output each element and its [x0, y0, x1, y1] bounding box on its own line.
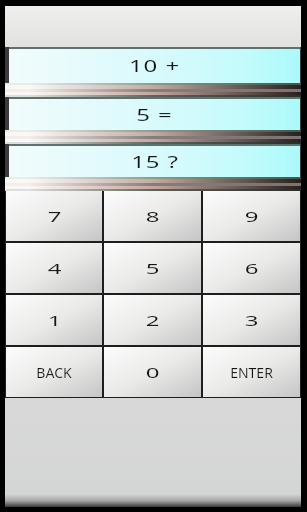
button[interactable]: 6	[203, 243, 300, 293]
staticText: BACK	[36, 363, 72, 382]
button[interactable]: 5	[104, 243, 201, 293]
button[interactable]: 4	[6, 243, 102, 293]
staticText: 7	[47, 206, 62, 226]
staticText: 2	[145, 310, 160, 330]
staticText: 0	[145, 362, 160, 382]
staticText: 8	[145, 206, 160, 226]
staticText: ENTER	[230, 363, 273, 382]
staticText: 6	[244, 258, 259, 278]
staticText: 10 +	[128, 55, 181, 77]
staticText: 9	[244, 206, 259, 226]
staticText: 5	[145, 258, 160, 278]
button[interactable]: 8	[104, 191, 201, 241]
button[interactable]: 7	[6, 191, 102, 241]
button[interactable]: ENTER	[203, 347, 300, 397]
button[interactable]: BACK	[6, 347, 102, 397]
button[interactable]: 10 +	[5, 47, 301, 83]
button[interactable]: 15 ?	[5, 144, 301, 177]
staticText: 5 =	[136, 104, 173, 126]
button[interactable]: 9	[203, 191, 300, 241]
staticText: 15 ?	[131, 151, 179, 173]
staticText: 3	[244, 310, 259, 330]
button[interactable]: 0	[104, 347, 201, 397]
button[interactable]: 3	[203, 295, 300, 345]
staticText: 1	[47, 310, 62, 330]
button[interactable]: 2	[104, 295, 201, 345]
button[interactable]: 1	[6, 295, 102, 345]
button[interactable]: 5 =	[5, 97, 301, 130]
staticText: 4	[47, 258, 62, 278]
